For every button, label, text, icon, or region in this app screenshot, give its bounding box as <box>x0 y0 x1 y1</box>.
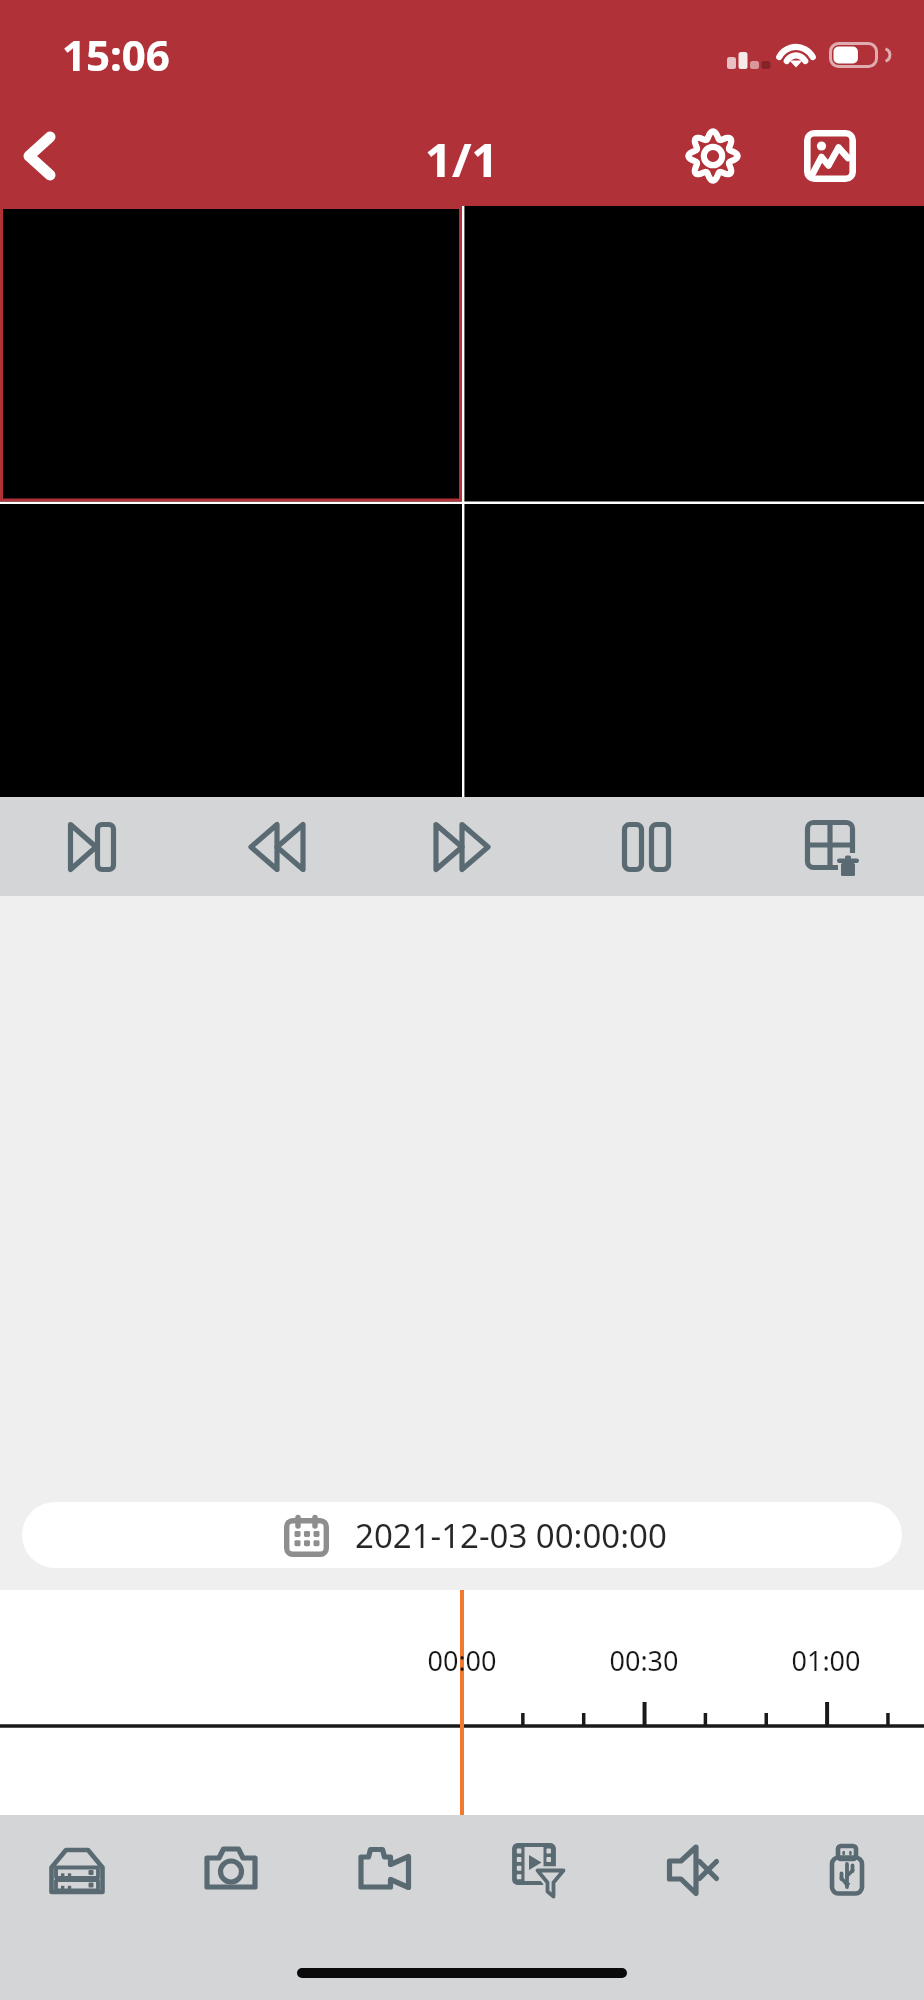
button[interactable]: Layout <box>739 797 924 896</box>
button[interactable]: Settings <box>673 116 753 196</box>
staticText: 01:00 <box>791 1642 861 1679</box>
button[interactable]: Video filter <box>462 1815 616 1926</box>
staticText: 1/1 <box>425 127 499 191</box>
staticText: 2021-12-03 00:00:00 <box>355 1513 667 1558</box>
button[interactable] <box>0 501 462 797</box>
button[interactable]: Mute <box>616 1815 770 1926</box>
button[interactable] <box>462 206 924 501</box>
button[interactable] <box>462 501 924 797</box>
button[interactable]: Rewind <box>184 797 369 896</box>
button[interactable]: Step forward <box>0 797 184 896</box>
button[interactable]: Record <box>308 1815 462 1926</box>
button[interactable]: Back <box>2 116 82 196</box>
button[interactable]: Device list <box>0 1815 154 1926</box>
button[interactable]: Download <box>770 1815 924 1926</box>
button[interactable]: Snapshot <box>154 1815 308 1926</box>
staticText: 00:00 <box>427 1642 497 1679</box>
button[interactable]: 2021-12-03 00:00:00 <box>22 1502 902 1568</box>
staticText: 00:30 <box>609 1642 679 1679</box>
button[interactable] <box>0 206 462 501</box>
button[interactable]: Gallery <box>790 116 870 196</box>
staticText: 15:06 <box>62 26 170 83</box>
button[interactable]: Pause <box>554 797 739 896</box>
button[interactable]: Fast forward <box>369 797 554 896</box>
